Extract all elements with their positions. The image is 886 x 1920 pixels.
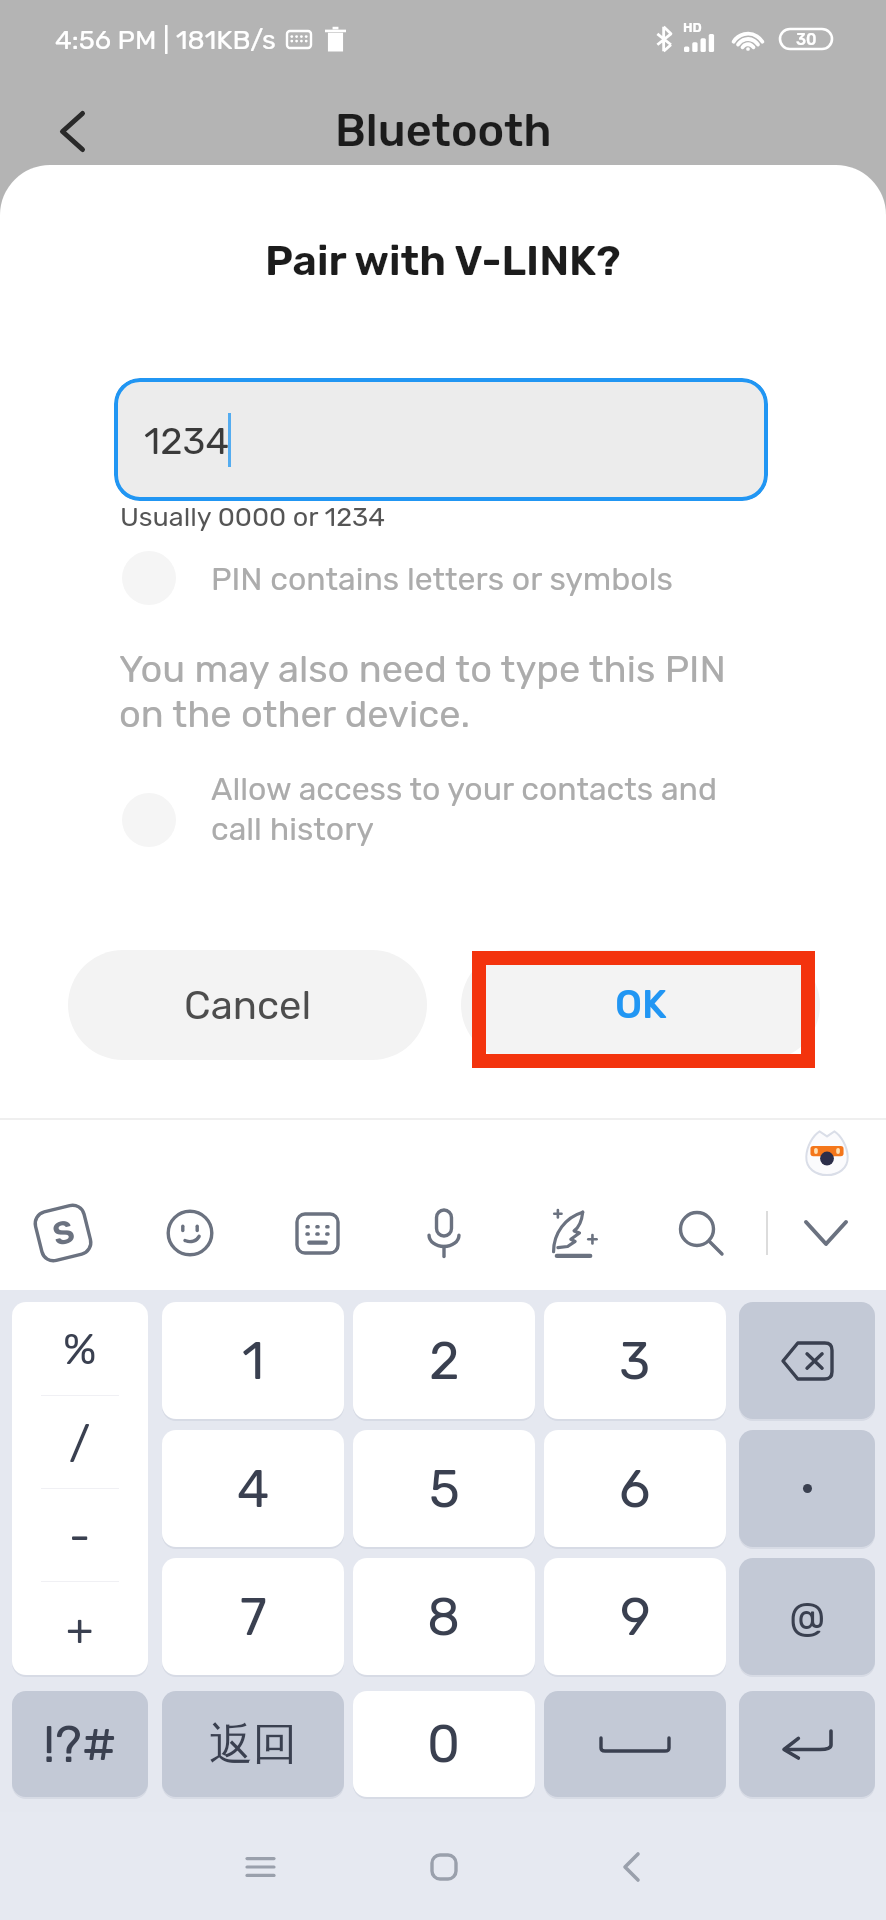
staticText: - (69, 1510, 91, 1562)
button[interactable] (739, 1430, 875, 1547)
button[interactable]: 3 (544, 1302, 726, 1419)
staticText: @ (789, 1591, 826, 1643)
button[interactable]: Cancel (68, 950, 427, 1060)
staticText: OK (615, 982, 667, 1028)
button[interactable]: Voice input (406, 1195, 482, 1271)
button[interactable]: 返回 (162, 1691, 344, 1797)
button[interactable]: !?# (12, 1691, 148, 1797)
staticText: 1234 (144, 418, 230, 463)
button[interactable]: 8 (353, 1558, 535, 1675)
button[interactable]: OK (461, 950, 820, 1060)
button[interactable]: Back (34, 93, 110, 169)
button[interactable]: Backspace (739, 1302, 875, 1419)
staticText: Allow access to your contacts and call h… (211, 770, 718, 848)
button[interactable]: % (12, 1302, 148, 1675)
button[interactable]: Hide keyboard (788, 1195, 864, 1271)
other: Backspace (780, 1341, 834, 1381)
staticText: 2 (429, 1330, 460, 1392)
other: Enter (780, 1729, 834, 1760)
button[interactable]: Handwriting (535, 1195, 611, 1271)
staticText: You may also need to type this PIN on th… (119, 646, 726, 736)
staticText: !?# (43, 1715, 117, 1774)
staticText: / (69, 1417, 91, 1469)
button[interactable]: 1 (162, 1302, 344, 1419)
button[interactable]: Search (663, 1195, 739, 1271)
staticText: Bluetooth (335, 104, 552, 157)
button[interactable]: 9 (544, 1558, 726, 1675)
staticText: 5 (429, 1458, 460, 1520)
staticText: HD (683, 20, 702, 35)
button[interactable]: Enter (739, 1691, 875, 1797)
staticText: 9 (620, 1586, 651, 1648)
staticText: % (63, 1323, 97, 1375)
button[interactable]: Emoji (152, 1195, 228, 1271)
staticText: 6 (619, 1458, 651, 1520)
staticText: 8 (427, 1586, 461, 1648)
staticText: Usually 0000 or 1234 (120, 501, 385, 533)
staticText: PIN contains letters or symbols (211, 560, 673, 598)
button[interactable]: 1234 (114, 378, 768, 501)
button[interactable]: Home (404, 1827, 484, 1907)
button[interactable]: 7 (162, 1558, 344, 1675)
button[interactable]: 2 (353, 1302, 535, 1419)
staticText: 1 (242, 1330, 265, 1392)
button[interactable]: Assistant (802, 1128, 852, 1178)
staticText: 0 (427, 1713, 461, 1775)
staticText: 4 (237, 1458, 270, 1520)
staticText: 7 (240, 1586, 267, 1648)
button[interactable]: 0 (353, 1691, 535, 1797)
button[interactable]: Space (544, 1691, 726, 1797)
button[interactable]: Allow access to your contacts and call h… (118, 770, 780, 870)
button[interactable]: Back (591, 1827, 671, 1907)
staticText: Cancel (184, 982, 312, 1029)
staticText: S (49, 1212, 78, 1254)
staticText: 4:56 PM | 181KB/s (55, 24, 276, 56)
staticText: + (66, 1603, 94, 1655)
button[interactable]: Sogou input (25, 1195, 101, 1271)
button[interactable]: Recent apps (220, 1827, 300, 1907)
staticText: 返回 (209, 1717, 297, 1772)
staticText: Pair with V-LINK? (265, 236, 621, 286)
button[interactable]: 6 (544, 1430, 726, 1547)
button[interactable]: 5 (353, 1430, 535, 1547)
button[interactable]: PIN contains letters or symbols (118, 545, 780, 619)
staticText: 3 (619, 1330, 651, 1392)
button[interactable]: @ (739, 1558, 875, 1675)
staticText: 30 (796, 30, 817, 49)
button[interactable]: Keyboard layout (279, 1195, 355, 1271)
other: Space (599, 1736, 671, 1753)
button[interactable]: 4 (162, 1430, 344, 1547)
